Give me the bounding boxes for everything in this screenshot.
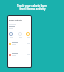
button[interactable]: Daily activity	[8, 16, 31, 24]
staticText: Track your calorie burn	[17, 4, 47, 8]
button[interactable]	[8, 38, 31, 49]
staticText: from fitness activity	[19, 7, 46, 11]
staticText: Daily activity	[9, 19, 22, 22]
button[interactable]	[8, 49, 31, 60]
